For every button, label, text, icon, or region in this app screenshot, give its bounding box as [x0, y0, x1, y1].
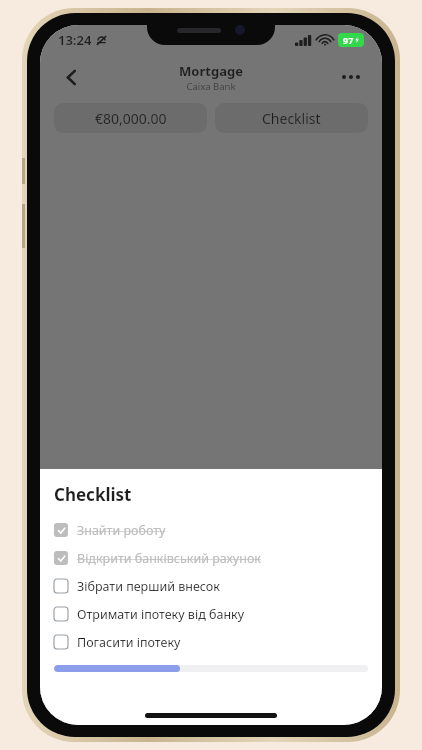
staticText: Mortgage: [179, 62, 243, 80]
staticText: в нас немає грошей: [99, 648, 221, 665]
staticText: 97: [343, 34, 354, 46]
staticText: Caixa Bank: [186, 80, 236, 93]
button[interactable]: More options: [334, 60, 368, 94]
staticText: Checklist: [54, 483, 132, 506]
button[interactable]: Checklist: [215, 103, 368, 133]
button[interactable]: €80,000.00: [54, 103, 207, 133]
staticText: Checklist: [262, 109, 321, 128]
staticText: €80,000.00: [95, 109, 167, 128]
button[interactable]: Знайти роботу: [54, 516, 368, 544]
button[interactable]: Відкрити банківський рахунок: [54, 544, 368, 572]
staticText: Відкрити банківський рахунок: [77, 550, 261, 567]
button[interactable]: Зібрати перший внесок: [54, 572, 368, 600]
staticText: Погасити іпотеку: [77, 634, 181, 651]
staticText: Зібрати перший внесок: [77, 578, 220, 595]
staticText: Знайти роботу: [77, 522, 166, 539]
staticText: 13:24: [58, 31, 92, 49]
button[interactable]: Back: [54, 60, 88, 94]
staticText: Отримати іпотеку від банку: [77, 606, 245, 623]
button[interactable]: Отримати іпотеку від банку: [54, 600, 368, 628]
button[interactable]: Погасити іпотеку: [54, 628, 368, 656]
